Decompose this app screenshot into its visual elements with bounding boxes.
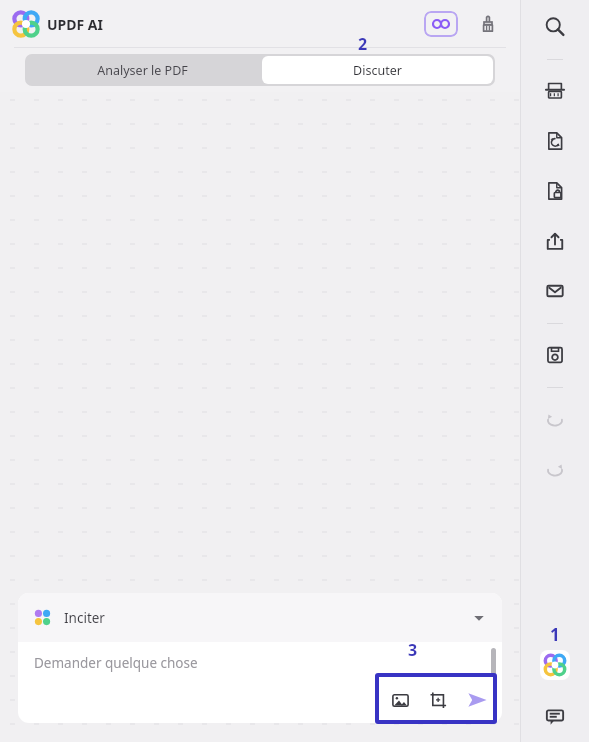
button[interactable]: Comments bbox=[538, 700, 572, 734]
button[interactable]: Share bbox=[527, 216, 583, 266]
button[interactable]: Convert PDF bbox=[527, 116, 583, 166]
button[interactable]: Clear conversation bbox=[474, 10, 502, 38]
staticText: UPDF AI bbox=[47, 15, 103, 34]
staticText: 2 bbox=[358, 33, 368, 55]
staticText: Inciter bbox=[64, 609, 105, 627]
button[interactable]: Undo bbox=[527, 394, 583, 444]
button[interactable]: Redo bbox=[527, 444, 583, 494]
button[interactable]: Save bbox=[527, 330, 583, 380]
button[interactable]: UPDF AI bbox=[540, 650, 570, 680]
staticText: 1 bbox=[550, 623, 560, 646]
staticText: Discuter bbox=[353, 62, 402, 79]
staticText: Demander quelque chose bbox=[34, 654, 198, 672]
button[interactable]: Capture area bbox=[422, 684, 454, 716]
button[interactable]: Discuter bbox=[262, 56, 493, 84]
button[interactable]: Send bbox=[460, 683, 494, 717]
button[interactable]: OCR bbox=[527, 66, 583, 116]
button[interactable]: Unlimited AI credits bbox=[424, 11, 458, 37]
button[interactable]: Attach image bbox=[384, 684, 416, 716]
button[interactable]: Protect PDF bbox=[527, 166, 583, 216]
button[interactable]: Search bbox=[527, 2, 583, 52]
button[interactable]: Email bbox=[527, 266, 583, 316]
button[interactable]: UPDF AI bbox=[14, 12, 103, 36]
staticText: Analyser le PDF bbox=[97, 62, 188, 79]
button[interactable]: Analyser le PDF bbox=[25, 54, 260, 86]
staticText: 3 bbox=[408, 639, 418, 661]
button[interactable]: Inciter bbox=[18, 593, 502, 642]
